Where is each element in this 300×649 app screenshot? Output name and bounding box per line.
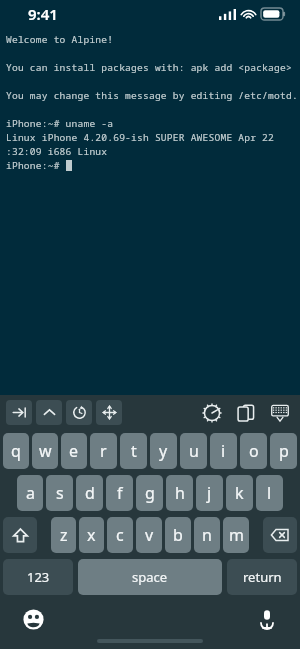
button[interactable]: h bbox=[166, 475, 193, 511]
button[interactable]: d bbox=[76, 475, 103, 511]
staticText: :32:09 i686 Linux bbox=[6, 145, 108, 158]
button[interactable]: y bbox=[150, 433, 177, 469]
staticText: e bbox=[69, 440, 79, 462]
staticText: u bbox=[189, 440, 199, 462]
staticText: iPhone:~# uname -a bbox=[6, 117, 114, 130]
staticText: t bbox=[131, 440, 137, 462]
staticText: Linux iPhone 4.20.69-ish SUPER AWESOME A… bbox=[6, 131, 300, 144]
button[interactable]: 123 bbox=[3, 559, 73, 595]
staticText: h bbox=[175, 482, 185, 504]
staticText: space bbox=[132, 568, 168, 586]
button[interactable]: return bbox=[227, 559, 297, 595]
staticText: You may change this message by editing /… bbox=[6, 89, 298, 102]
button[interactable]: m bbox=[223, 517, 249, 553]
button[interactable]: o bbox=[240, 433, 267, 469]
button[interactable]: w bbox=[32, 433, 58, 469]
button[interactable]: q bbox=[3, 433, 29, 469]
staticText: w bbox=[39, 440, 52, 462]
staticText: i bbox=[221, 440, 226, 462]
button[interactable]: e bbox=[61, 433, 87, 469]
button[interactable]: Backspace bbox=[263, 517, 297, 553]
button[interactable]: f bbox=[106, 475, 133, 511]
button[interactable]: s bbox=[46, 475, 73, 511]
staticText: q bbox=[11, 440, 21, 462]
staticText: 9:41 bbox=[28, 4, 58, 24]
staticText: s bbox=[56, 482, 64, 504]
button[interactable]: Pages bbox=[234, 401, 258, 425]
button[interactable]: Hide keyboard bbox=[268, 401, 292, 425]
staticText: g bbox=[145, 482, 155, 504]
button[interactable]: Control bbox=[36, 400, 62, 425]
staticText: return bbox=[243, 568, 282, 586]
staticText: Welcome to Alpine! bbox=[6, 33, 114, 46]
staticText: x bbox=[87, 524, 96, 546]
button[interactable]: n bbox=[194, 517, 220, 553]
staticText: p bbox=[279, 440, 289, 462]
button[interactable]: Tab bbox=[6, 400, 32, 425]
staticText: z bbox=[60, 524, 68, 546]
button[interactable]: Dictation bbox=[254, 606, 280, 632]
button[interactable]: Shift bbox=[3, 517, 37, 553]
button[interactable]: Settings bbox=[200, 401, 224, 425]
staticText: v bbox=[145, 524, 154, 546]
button[interactable]: t bbox=[120, 433, 147, 469]
button[interactable]: r bbox=[90, 433, 117, 469]
staticText: You can install packages with: apk add <… bbox=[6, 61, 292, 74]
staticText: m bbox=[229, 524, 244, 546]
button[interactable]: z bbox=[51, 517, 76, 553]
staticText: n bbox=[202, 524, 212, 546]
staticText: l bbox=[267, 482, 272, 504]
staticText: k bbox=[235, 482, 244, 504]
button[interactable]: k bbox=[226, 475, 253, 511]
button[interactable]: space bbox=[78, 559, 222, 595]
staticText: a bbox=[26, 482, 35, 504]
staticText: r bbox=[100, 440, 107, 462]
button[interactable]: p bbox=[270, 433, 297, 469]
button[interactable]: b bbox=[165, 517, 191, 553]
button[interactable]: x bbox=[79, 517, 104, 553]
staticText: j bbox=[207, 482, 212, 504]
button[interactable]: c bbox=[107, 517, 133, 553]
button[interactable]: i bbox=[210, 433, 237, 469]
staticText: y bbox=[159, 440, 168, 462]
button[interactable]: a bbox=[17, 475, 43, 511]
button[interactable]: g bbox=[136, 475, 163, 511]
staticText: 123 bbox=[27, 568, 50, 586]
button[interactable]: l bbox=[256, 475, 283, 511]
staticText: d bbox=[85, 482, 95, 504]
button[interactable]: u bbox=[180, 433, 207, 469]
staticText: b bbox=[173, 524, 183, 546]
button[interactable]: History bbox=[66, 400, 92, 425]
button[interactable]: Emoji bbox=[20, 606, 46, 632]
staticText: c bbox=[116, 524, 124, 546]
button[interactable]: v bbox=[136, 517, 162, 553]
staticText: o bbox=[249, 440, 259, 462]
staticText: f bbox=[117, 482, 123, 504]
button[interactable]: Arrows bbox=[96, 400, 122, 425]
staticText: iPhone:~# bbox=[6, 159, 66, 172]
button[interactable]: j bbox=[196, 475, 223, 511]
